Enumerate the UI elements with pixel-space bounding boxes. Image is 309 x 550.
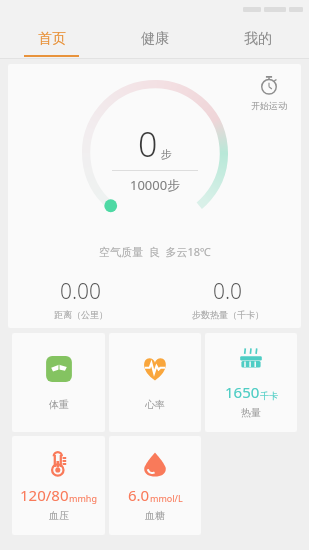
button[interactable]: 6.0 [109,436,201,535]
staticText: 6.0 [128,485,150,505]
staticText: 步 [161,147,172,161]
staticText: 血压 [49,509,69,522]
staticText: 体重 [49,398,69,411]
staticText: 血糖 [145,509,165,522]
staticText: 0 [138,121,158,167]
staticText: 1650 [225,382,260,402]
staticText: 空气质量 良 多云18℃ [99,244,211,259]
staticText: 开始运动 [251,100,287,111]
staticText: 10000步 [130,176,181,194]
staticText: 0.0 [213,277,243,306]
button[interactable]: 0.0 [154,277,301,320]
button[interactable]: 120/80 [12,436,105,535]
button[interactable]: 健康 [103,18,206,59]
button[interactable]: 1650 [205,333,297,432]
staticText: 120/80 [20,485,69,505]
button[interactable]: 体重 [12,333,105,432]
staticText: 热量 [241,406,261,419]
staticText: 首页 [38,30,66,48]
staticText: 健康 [141,30,169,48]
button[interactable]: 我的 [206,18,309,59]
staticText: mmhg [69,492,97,504]
button[interactable]: 首页 [0,18,103,59]
button[interactable]: 开始运动 [247,70,291,115]
staticText: 距离（公里） [54,309,108,320]
staticText: 千卡 [260,390,278,401]
button[interactable]: 心率 [109,333,201,432]
staticText: 心率 [145,398,165,411]
button[interactable]: 0.00 [8,277,154,320]
staticText: 步数热量（千卡） [192,309,264,320]
staticText: 我的 [244,30,272,48]
staticText: mmol/L [150,492,183,504]
staticText: 0.00 [60,277,102,306]
